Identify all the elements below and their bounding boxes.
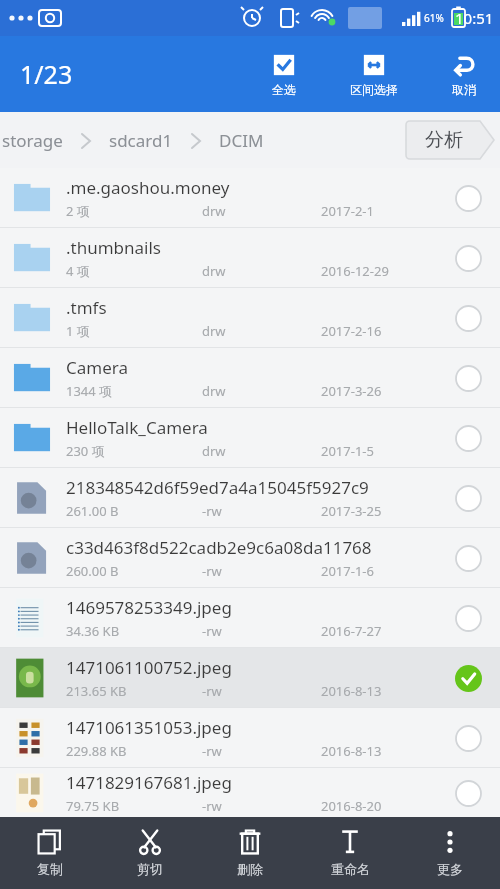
button[interactable]: 218348542d6f59ed7a4a15045f5927c9: [0, 468, 500, 528]
staticText: 261.00 B: [66, 502, 202, 520]
button[interactable]: 全选: [256, 48, 312, 101]
button[interactable]: 更多: [400, 817, 500, 889]
staticText: HelloTalk_Camera: [66, 416, 208, 439]
staticText: 取消: [452, 82, 476, 97]
staticText: 1 项: [66, 322, 202, 340]
button[interactable]: Select: [446, 771, 490, 815]
staticText: 1344 项: [66, 382, 202, 400]
staticText: drw: [202, 262, 321, 280]
staticText: -rw: [202, 797, 321, 815]
staticText: 2017-1-6: [321, 562, 440, 580]
staticText: 全选: [272, 82, 296, 97]
button[interactable]: DCIM: [219, 129, 264, 152]
staticText: 1/23: [20, 57, 73, 91]
staticText: 1471061100752.jpeg: [66, 656, 232, 679]
staticText: 2017-2-1: [321, 202, 440, 220]
staticText: 213.65 KB: [66, 682, 202, 700]
button[interactable]: .me.gaoshou.money: [0, 168, 500, 228]
staticText: 230 项: [66, 442, 202, 460]
button[interactable]: Select: [446, 236, 490, 280]
staticText: 删除: [237, 861, 263, 877]
staticText: 2016-8-13: [321, 682, 440, 700]
staticText: -rw: [202, 682, 321, 700]
staticText: 2017-3-25: [321, 502, 440, 520]
button[interactable]: 复制: [0, 817, 100, 889]
button[interactable]: storage: [2, 129, 63, 152]
button[interactable]: Select: [446, 416, 490, 460]
button[interactable]: 区间选择: [346, 48, 402, 101]
button[interactable]: Select: [446, 536, 490, 580]
staticText: 复制: [37, 861, 63, 877]
button[interactable]: 剪切: [100, 817, 200, 889]
staticText: drw: [202, 442, 321, 460]
button[interactable]: 1471061351053.jpeg: [0, 708, 500, 768]
staticText: 2016-7-27: [321, 622, 440, 640]
staticText: 1471829167681.jpeg: [66, 771, 232, 794]
staticText: .thumbnails: [66, 236, 162, 259]
staticText: 2017-2-16: [321, 322, 440, 340]
button[interactable]: HelloTalk_Camera: [0, 408, 500, 468]
staticText: drw: [202, 322, 321, 340]
button[interactable]: 重命名: [300, 817, 400, 889]
staticText: 2016-8-20: [321, 797, 440, 815]
button[interactable]: Select: [446, 176, 490, 220]
button[interactable]: Camera: [0, 348, 500, 408]
staticText: drw: [202, 202, 321, 220]
staticText: 重命名: [331, 861, 370, 877]
staticText: drw: [202, 382, 321, 400]
staticText: 218348542d6f59ed7a4a15045f5927c9: [66, 476, 369, 499]
button[interactable]: 1471061100752.jpeg: [0, 648, 500, 708]
button[interactable]: Select: [446, 476, 490, 520]
staticText: 229.88 KB: [66, 742, 202, 760]
button[interactable]: Select: [446, 716, 490, 760]
staticText: 260.00 B: [66, 562, 202, 580]
button[interactable]: .tmfs: [0, 288, 500, 348]
staticText: 34.36 KB: [66, 622, 202, 640]
staticText: 4 项: [66, 262, 202, 280]
staticText: 1471061351053.jpeg: [66, 716, 232, 739]
staticText: 1469578253349.jpeg: [66, 596, 232, 619]
button[interactable]: Selected: [446, 656, 490, 700]
staticText: .me.gaoshou.money: [66, 176, 230, 199]
staticText: 79.75 KB: [66, 797, 202, 815]
staticText: 2017-3-26: [321, 382, 440, 400]
staticText: 2 项: [66, 202, 202, 220]
staticText: 分析: [425, 128, 463, 152]
button[interactable]: 删除: [200, 817, 300, 889]
staticText: 更多: [437, 861, 463, 877]
staticText: 区间选择: [350, 82, 398, 97]
button[interactable]: Select: [446, 296, 490, 340]
staticText: .tmfs: [66, 296, 107, 319]
button[interactable]: 1469578253349.jpeg: [0, 588, 500, 648]
staticText: -rw: [202, 502, 321, 520]
staticText: -rw: [202, 562, 321, 580]
button[interactable]: 1471829167681.jpeg: [0, 768, 500, 817]
staticText: -rw: [202, 622, 321, 640]
button[interactable]: 分析: [406, 121, 494, 159]
staticText: 61%: [424, 11, 444, 25]
staticText: 剪切: [137, 861, 163, 877]
staticText: c33d463f8d522cadb2e9c6a08da11768: [66, 536, 372, 559]
button[interactable]: c33d463f8d522cadb2e9c6a08da11768: [0, 528, 500, 588]
staticText: 2017-1-5: [321, 442, 440, 460]
staticText: 2016-12-29: [321, 262, 440, 280]
button[interactable]: Select: [446, 356, 490, 400]
button[interactable]: sdcard1: [109, 129, 173, 152]
button[interactable]: Select: [446, 596, 490, 640]
button[interactable]: 取消: [436, 48, 492, 101]
staticText: 10:51: [455, 8, 494, 28]
staticText: Camera: [66, 356, 128, 379]
staticText: 2016-8-13: [321, 742, 440, 760]
button[interactable]: .thumbnails: [0, 228, 500, 288]
staticText: -rw: [202, 742, 321, 760]
